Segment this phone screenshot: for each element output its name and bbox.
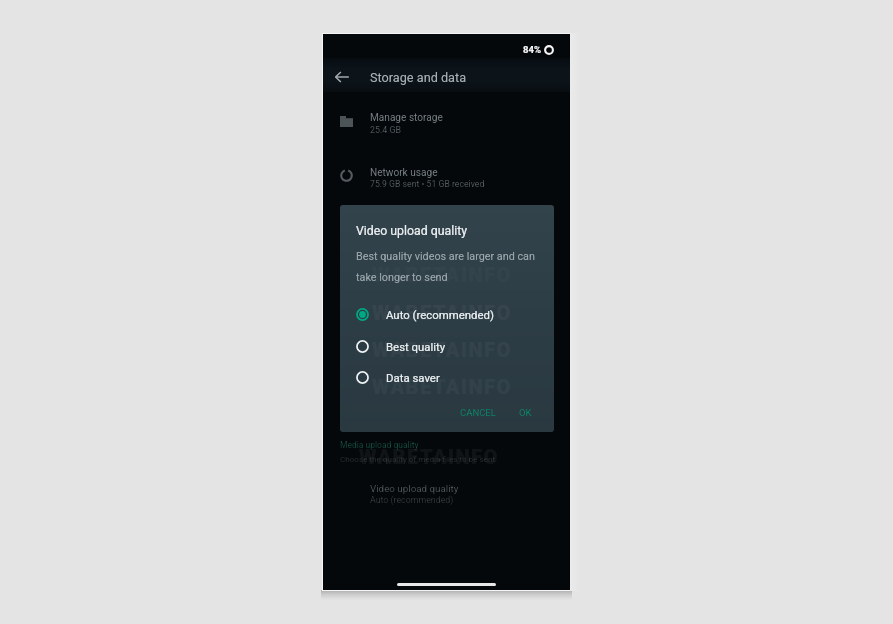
staticText: Best quality	[386, 340, 446, 353]
staticText: Manage storage	[370, 112, 443, 124]
staticText: 75.9 GB sent • 51 GB received	[370, 179, 485, 189]
button[interactable]: Best quality	[340, 333, 554, 359]
staticText: Choose the quality of media files to be …	[340, 454, 498, 463]
staticText: WABETAINFO	[372, 263, 512, 286]
staticText: 25.4 GB	[370, 125, 402, 135]
staticText: Best quality videos are larger and can	[356, 250, 535, 263]
button[interactable]: OK	[513, 402, 538, 422]
staticText: Auto (recommended)	[386, 308, 494, 321]
staticText: WABETAINFO	[372, 338, 512, 361]
staticText: WABETAINFO	[372, 375, 512, 398]
staticText: OK	[519, 407, 532, 418]
staticText: Storage and data	[370, 70, 467, 85]
button[interactable]	[323, 105, 570, 137]
staticText: WABETAINFO	[372, 301, 512, 324]
staticText: Media upload quality	[340, 440, 419, 450]
staticText: Auto (recommended)	[370, 495, 454, 505]
button[interactable]: Data saver	[340, 364, 554, 390]
staticText: Video upload quality	[356, 224, 467, 238]
staticText: CANCEL	[460, 407, 496, 418]
staticText: Network usage	[370, 167, 438, 179]
button[interactable]	[323, 159, 570, 191]
staticText: take longer to send	[356, 271, 448, 284]
staticText: 84%	[523, 44, 541, 55]
staticText: Video upload quality	[370, 483, 459, 494]
staticText: WABETAINFO	[359, 445, 499, 468]
button[interactable]: Auto (recommended)	[340, 301, 554, 327]
button[interactable]: CANCEL	[454, 402, 502, 422]
staticText: Data saver	[386, 371, 440, 384]
button[interactable]: Back	[328, 63, 356, 91]
